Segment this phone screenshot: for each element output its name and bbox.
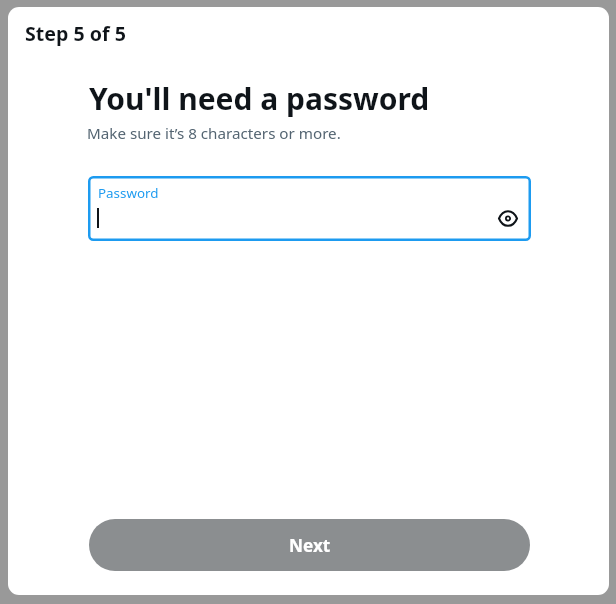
staticText: Step 5 of 5 — [25, 20, 126, 47]
button[interactable]: Next — [89, 519, 530, 571]
staticText: Next — [289, 534, 331, 557]
staticText: Password — [98, 184, 159, 202]
staticText: You'll need a password — [89, 78, 430, 119]
button[interactable]: Password — [88, 176, 531, 241]
staticText: Make sure it’s 8 characters or more. — [87, 123, 341, 144]
button[interactable]: Show password — [486, 197, 529, 240]
